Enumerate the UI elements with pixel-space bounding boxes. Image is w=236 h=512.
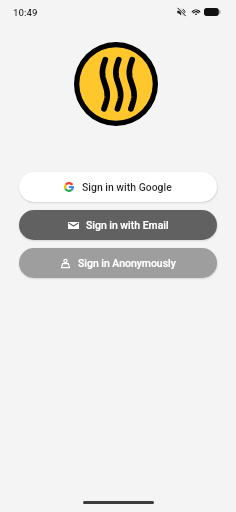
- staticText: Sign in Anonymously: [78, 257, 176, 269]
- button[interactable]: Sign in with Google: [19, 172, 217, 202]
- staticText: Sign in with Google: [82, 181, 172, 193]
- staticText: Sign in with Email: [86, 219, 169, 231]
- button[interactable]: Sign in Anonymously: [19, 248, 217, 278]
- staticText: 10:49: [13, 7, 38, 18]
- button[interactable]: Sign in with Email: [19, 210, 217, 240]
